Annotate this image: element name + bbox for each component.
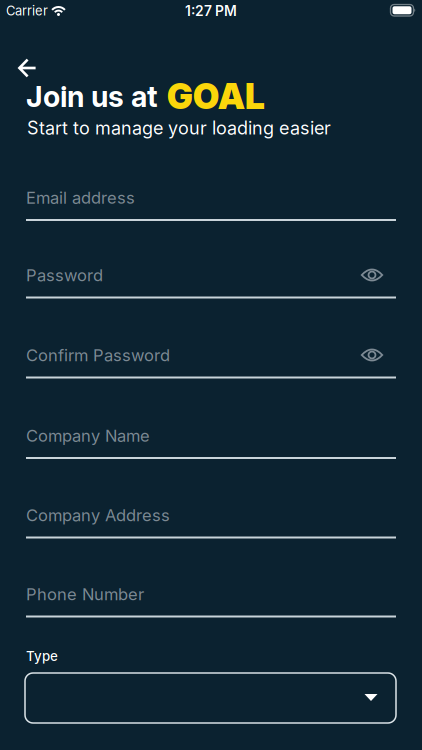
staticText: Type: [26, 648, 58, 664]
button[interactable]: Phone Number: [26, 580, 396, 617]
staticText: Email address: [26, 188, 135, 208]
staticText: Carrier: [6, 3, 48, 19]
staticText: Company Name: [26, 426, 150, 446]
button[interactable]: Email address: [26, 184, 396, 221]
button[interactable]: Company Address: [26, 501, 396, 538]
staticText: Company Address: [26, 505, 170, 525]
staticText: GOAL: [167, 75, 265, 117]
staticText: Confirm Password: [26, 345, 170, 365]
button[interactable]: [10, 50, 45, 86]
button[interactable]: [354, 262, 389, 287]
staticText: Join us at: [26, 79, 158, 114]
staticText: Password: [26, 265, 103, 285]
button[interactable]: Company Name: [26, 422, 396, 459]
button[interactable]: [25, 673, 396, 723]
button[interactable]: Password: [26, 261, 396, 298]
staticText: Phone Number: [26, 584, 144, 604]
staticText: Start to manage your loading easier: [27, 117, 331, 139]
staticText: 1:27 PM: [185, 2, 237, 19]
button[interactable]: [354, 342, 389, 367]
button[interactable]: Confirm Password: [26, 341, 396, 378]
